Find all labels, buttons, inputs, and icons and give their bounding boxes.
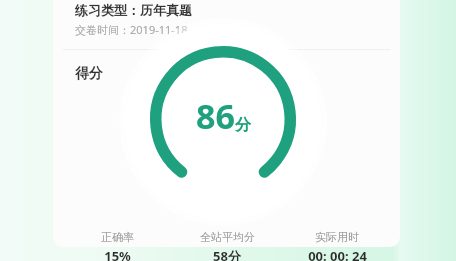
staticText: 实际用时 [315,230,359,244]
button[interactable]: 正确率 [62,229,172,261]
staticText: 86 [196,93,235,139]
staticText: 58分 [213,247,241,261]
button[interactable]: 实际用时 [282,229,392,261]
button[interactable]: 全站平均分 [172,229,282,261]
button[interactable]: 得分 86 分 [150,46,296,192]
staticText: 交卷时间：2019-11-18 [75,22,188,37]
staticText: 00: 00: 24 [308,247,367,261]
staticText: 15% [104,247,131,261]
staticText: 正确率 [101,230,134,244]
staticText: 得分 [75,65,103,83]
staticText: 全站平均分 [200,230,255,244]
staticText: 分 [235,115,251,135]
staticText: 练习类型：历年真题 [75,2,192,18]
